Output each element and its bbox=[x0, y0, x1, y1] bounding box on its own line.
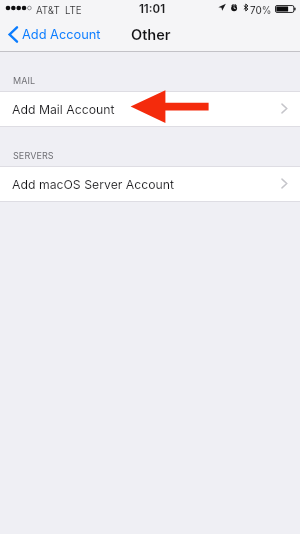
staticText: Other bbox=[131, 26, 171, 44]
button[interactable]: Add Account bbox=[0, 23, 109, 46]
staticText: 11:01 bbox=[139, 2, 166, 16]
button[interactable]: Add Mail Account bbox=[0, 92, 300, 126]
staticText: AT&T bbox=[36, 5, 60, 17]
staticText: Add Mail Account bbox=[12, 102, 115, 117]
staticText: LTE bbox=[65, 5, 82, 17]
staticText: SERVERS bbox=[13, 150, 54, 161]
staticText: 70% bbox=[250, 5, 272, 17]
staticText: MAIL bbox=[13, 75, 36, 86]
button[interactable]: Add macOS Server Account bbox=[0, 167, 300, 201]
staticText: Add macOS Server Account bbox=[12, 177, 175, 192]
staticText: Add Account bbox=[22, 27, 101, 42]
